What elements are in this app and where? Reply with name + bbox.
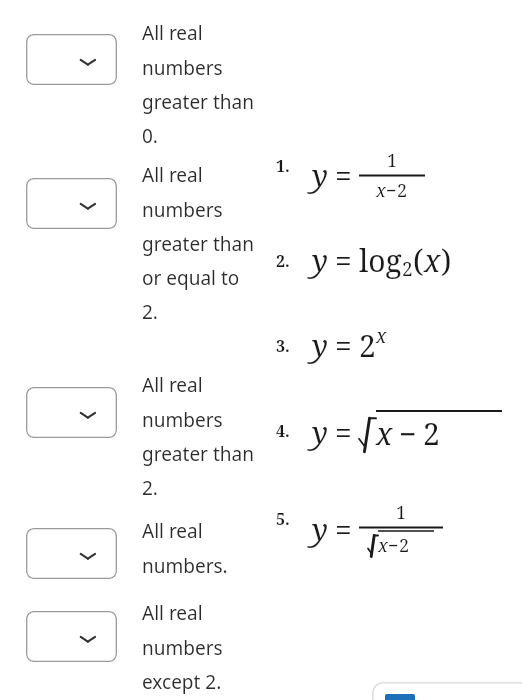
staticText: ) [441, 240, 452, 281]
button[interactable]: All real numbers greater than 2. [142, 372, 254, 500]
button[interactable]: All real numbers greater than 0. [142, 20, 254, 148]
staticText: = [335, 240, 352, 281]
button[interactable]: Answer card [372, 682, 522, 700]
staticText: ( [413, 240, 424, 281]
button[interactable]: Select an answer [26, 387, 117, 438]
staticText: 2 [397, 178, 408, 203]
button[interactable]: All real numbers. [142, 518, 254, 578]
staticText: 3. [276, 335, 290, 357]
staticText: All real numbers greater than or equal t… [142, 162, 254, 324]
staticText: x [376, 413, 393, 454]
button[interactable]: Select an answer [26, 611, 117, 662]
staticText: All real numbers greater than 2. [142, 372, 254, 500]
button[interactable]: Select an answer [26, 528, 117, 579]
staticText: All real numbers. [142, 518, 254, 578]
button[interactable]: All real numbers greater than or equal t… [142, 162, 254, 324]
staticText: = [335, 155, 352, 196]
staticText: x [376, 178, 386, 203]
staticText: y [312, 412, 328, 453]
staticText: 1. [276, 155, 290, 177]
staticText: = [335, 412, 352, 453]
staticText: 4. [276, 420, 290, 442]
staticText: 2 [399, 533, 410, 558]
staticText: 5. [276, 508, 290, 530]
button[interactable]: Select an answer [26, 178, 117, 229]
staticText: All real numbers except 2. [142, 600, 254, 694]
staticText: y [312, 155, 328, 196]
staticText: x [424, 240, 441, 281]
staticText: y [312, 325, 328, 366]
staticText: 2 [402, 256, 413, 282]
staticText: − [386, 178, 397, 203]
staticText: 1 [387, 148, 398, 173]
staticText: = [335, 509, 352, 550]
staticText: 2 [359, 325, 376, 366]
staticText: y [312, 240, 328, 281]
staticText: 2 [423, 413, 440, 454]
button[interactable]: All real numbers except 2. [142, 600, 254, 694]
staticText: 2. [276, 250, 290, 272]
staticText: 1 [396, 500, 407, 525]
button[interactable]: Select an answer [26, 34, 117, 85]
staticText: All real numbers greater than 0. [142, 20, 254, 148]
staticText: x [376, 323, 387, 349]
staticText: x [378, 533, 388, 558]
staticText: − [388, 533, 399, 558]
staticText: = [335, 325, 352, 366]
staticText: − [399, 413, 417, 454]
staticText: y [312, 509, 328, 550]
staticText: log [359, 240, 402, 281]
